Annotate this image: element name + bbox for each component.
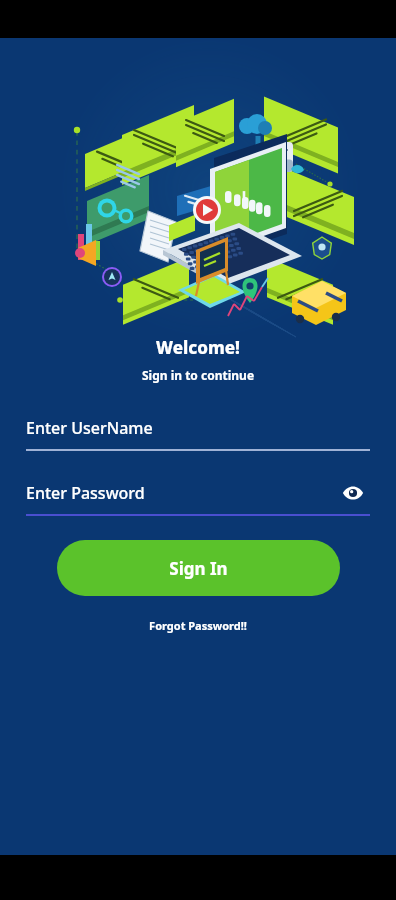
button[interactable]: Show password bbox=[336, 476, 370, 510]
staticText: Enter UserName bbox=[26, 417, 153, 439]
staticText: Sign in to continue bbox=[0, 367, 396, 383]
staticText: Forgot Password!! bbox=[149, 618, 247, 633]
button[interactable]: Enter Password bbox=[26, 472, 370, 514]
button[interactable]: Forgot Password!! bbox=[141, 614, 255, 637]
staticText: Sign In bbox=[169, 557, 228, 580]
button[interactable]: Enter UserName bbox=[26, 407, 370, 451]
button[interactable]: Sign In bbox=[57, 540, 340, 596]
staticText: Enter Password bbox=[26, 482, 145, 504]
staticText: Welcome! bbox=[0, 336, 396, 359]
